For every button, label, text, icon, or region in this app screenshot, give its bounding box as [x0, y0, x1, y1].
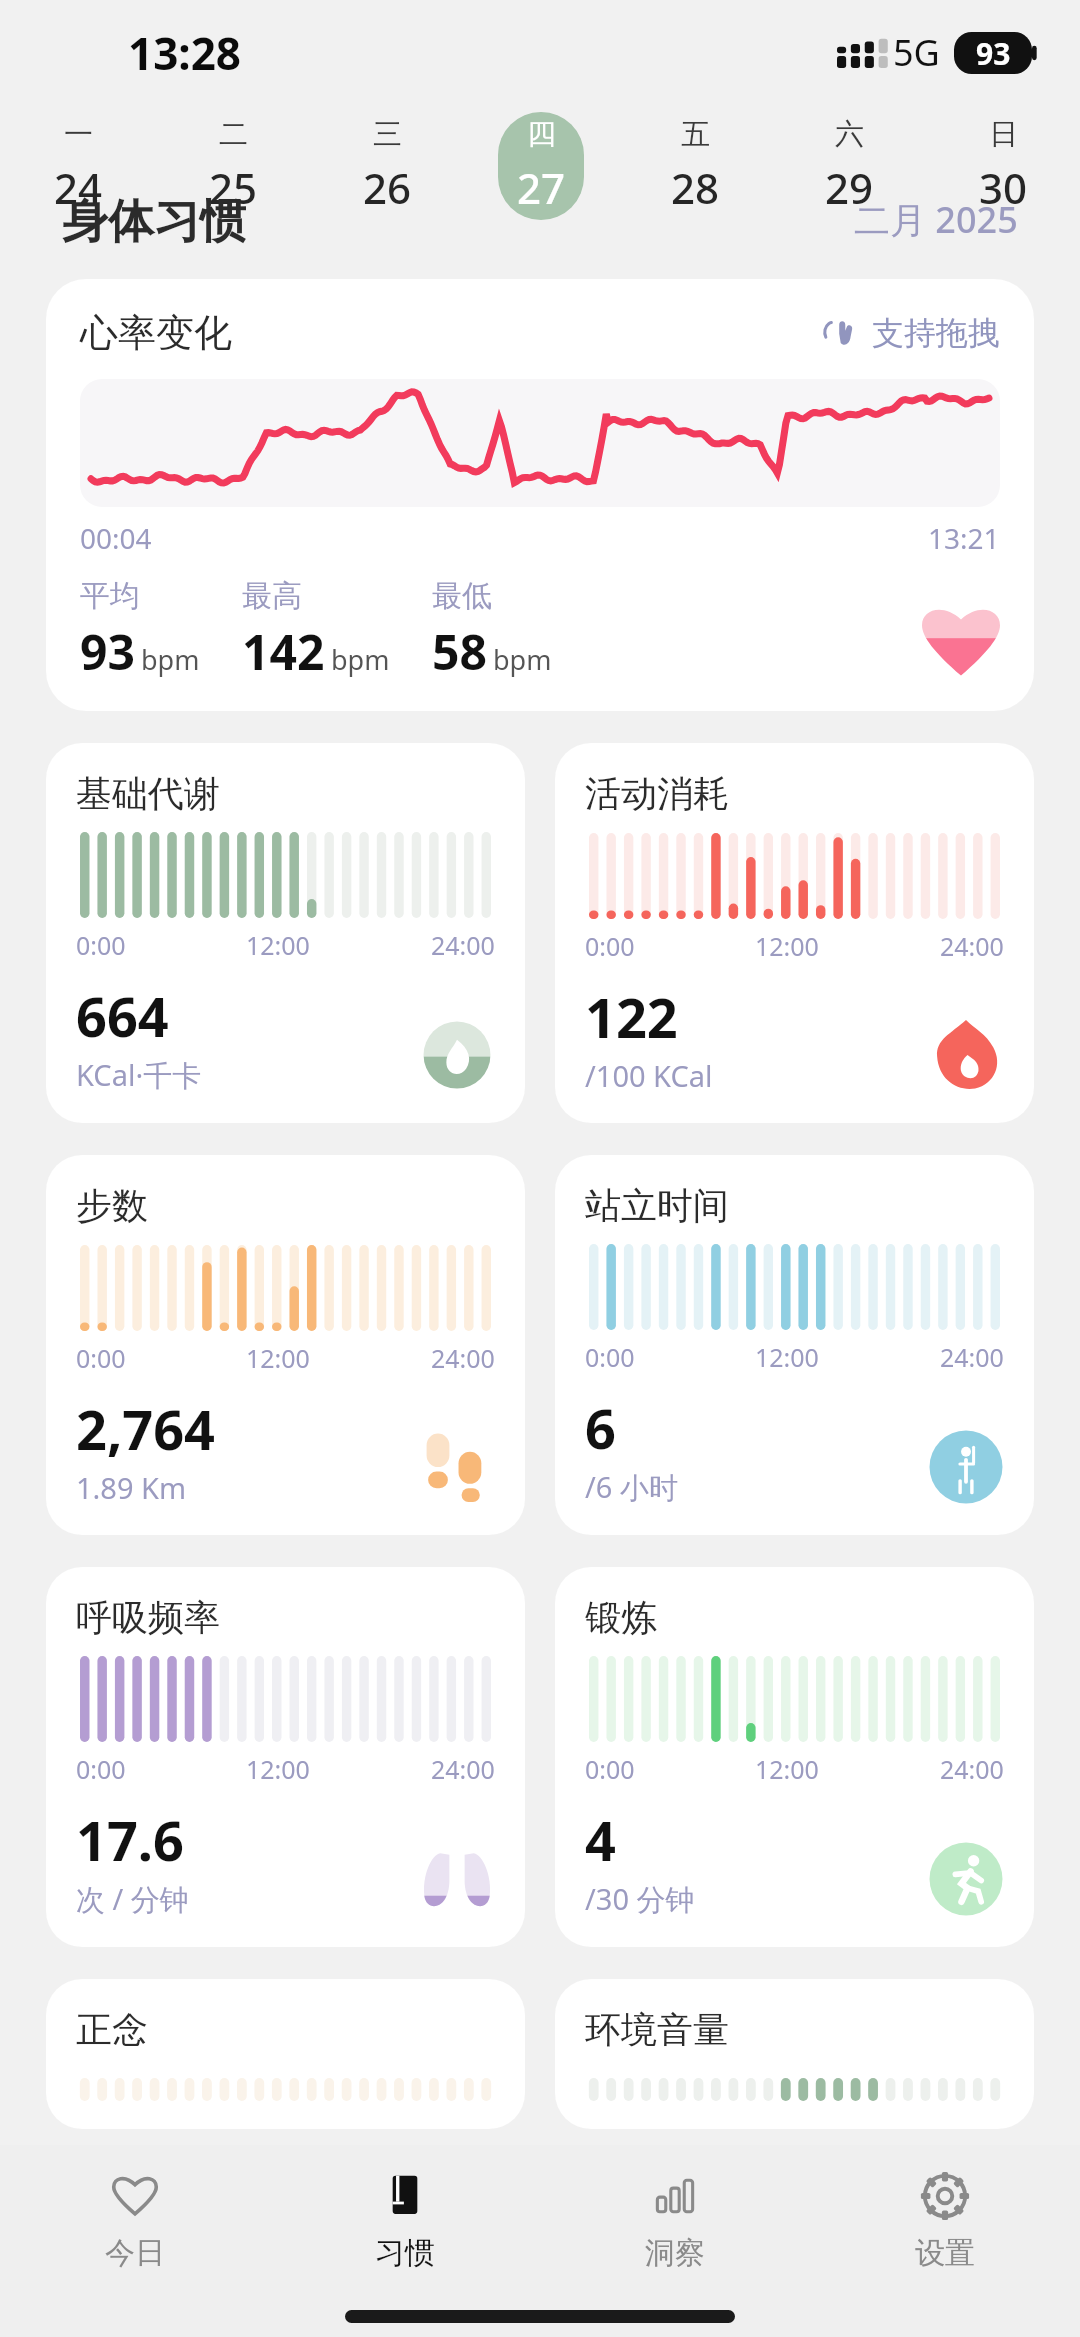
staticText: 29 — [825, 159, 874, 216]
staticText: KCal·千卡 — [76, 1055, 202, 1095]
button[interactable]: 六 — [806, 112, 892, 220]
staticText: 28 — [671, 159, 720, 216]
staticText: 0:00 — [76, 1752, 126, 1786]
staticText: 习惯 — [375, 2234, 435, 2272]
staticText: 环境音量 — [585, 2007, 729, 2052]
staticText: 27 — [517, 159, 566, 216]
button[interactable]: 设置 — [810, 2145, 1080, 2295]
staticText: bpm — [141, 641, 200, 678]
staticText: 24:00 — [940, 929, 1004, 963]
staticText: 身体习惯 — [62, 193, 246, 245]
staticText: 12:00 — [755, 1752, 819, 1786]
button[interactable]: 呼吸频率 — [46, 1567, 525, 1947]
staticText: 6 — [585, 1391, 616, 1465]
staticText: 四 — [527, 116, 556, 153]
button[interactable]: 正念 — [46, 1979, 525, 2129]
staticText: 12:00 — [755, 1340, 819, 1374]
staticText: 12:00 — [755, 929, 819, 963]
staticText: 三 — [373, 116, 402, 153]
staticText: /6 小时 — [585, 1467, 678, 1507]
staticText: 二月 2025 — [854, 195, 1018, 244]
staticText: 洞察 — [645, 2234, 705, 2272]
button[interactable]: 锻炼 — [555, 1567, 1034, 1947]
button[interactable]: 洞察 — [540, 2145, 810, 2295]
staticText: 活动消耗 — [585, 771, 729, 816]
button[interactable]: 站立时间 — [555, 1155, 1034, 1535]
staticText: 支持拖拽 — [872, 313, 1000, 353]
staticText: 锻炼 — [585, 1595, 657, 1640]
staticText: 30 — [979, 159, 1028, 216]
staticText: 0:00 — [585, 1340, 635, 1374]
staticText: 26 — [363, 159, 412, 216]
button[interactable]: 今日 — [0, 2145, 270, 2295]
button[interactable]: 基础代谢 — [46, 743, 525, 1123]
button[interactable]: 日 — [960, 112, 1046, 220]
staticText: 4 — [585, 1803, 616, 1877]
staticText: bpm — [493, 641, 552, 678]
staticText: 0:00 — [585, 1752, 635, 1786]
button[interactable]: 环境音量 — [555, 1979, 1034, 2129]
staticText: 正念 — [76, 2007, 148, 2052]
staticText: 25 — [209, 159, 258, 216]
staticText: 58 — [432, 619, 487, 681]
staticText: 二 — [219, 116, 248, 153]
button[interactable]: 习惯 — [270, 2145, 540, 2295]
staticText: 664 — [76, 979, 169, 1053]
staticText: 呼吸频率 — [76, 1595, 220, 1640]
staticText: 122 — [585, 980, 678, 1054]
staticText: 13:21 — [928, 519, 1000, 557]
staticText: 0:00 — [76, 1341, 126, 1375]
staticText: 12:00 — [246, 1341, 310, 1375]
staticText: 24:00 — [431, 1752, 495, 1786]
button[interactable]: 活动消耗 — [555, 743, 1034, 1123]
staticText: 次 / 分钟 — [76, 1879, 189, 1919]
staticText: 17.6 — [76, 1803, 184, 1877]
staticText: 平均 — [80, 577, 140, 615]
staticText: 今日 — [105, 2234, 165, 2272]
staticText: 00:04 — [80, 519, 152, 557]
staticText: bpm — [331, 641, 390, 678]
button[interactable]: 五 — [652, 112, 738, 220]
staticText: 12:00 — [246, 928, 310, 962]
staticText: 最低 — [432, 577, 492, 615]
button[interactable]: 二 — [190, 112, 276, 220]
staticText: 24:00 — [431, 928, 495, 962]
staticText: 5G — [893, 28, 940, 77]
staticText: 六 — [835, 116, 864, 153]
staticText: 1.89 Km — [76, 1468, 187, 1507]
staticText: 12:00 — [246, 1752, 310, 1786]
staticText: 93 — [80, 619, 135, 681]
staticText: 13:28 — [128, 23, 242, 83]
staticText: 心率变化 — [80, 309, 232, 357]
staticText: 24:00 — [431, 1341, 495, 1375]
staticText: 24:00 — [940, 1752, 1004, 1786]
button[interactable]: 一 — [35, 112, 121, 220]
button[interactable]: 三 — [344, 112, 430, 220]
staticText: 五 — [681, 116, 710, 153]
staticText: 24:00 — [940, 1340, 1004, 1374]
button[interactable]: 心率变化 — [46, 279, 1034, 711]
staticText: 93 — [976, 33, 1011, 74]
staticText: 0:00 — [76, 928, 126, 962]
button[interactable]: 步数 — [46, 1155, 525, 1535]
staticText: 2,764 — [76, 1392, 215, 1466]
staticText: 站立时间 — [585, 1183, 729, 1228]
staticText: 步数 — [76, 1183, 148, 1228]
staticText: 142 — [242, 619, 325, 681]
staticText: /100 KCal — [585, 1056, 713, 1095]
staticText: 最高 — [242, 577, 302, 615]
staticText: 0:00 — [585, 929, 635, 963]
staticText: 基础代谢 — [76, 771, 220, 816]
button[interactable]: 四 — [498, 112, 584, 220]
staticText: 一 — [64, 116, 93, 153]
staticText: 24 — [54, 159, 103, 216]
staticText: 日 — [989, 116, 1018, 153]
staticText: 设置 — [915, 2234, 975, 2272]
staticText: /30 分钟 — [585, 1879, 695, 1919]
